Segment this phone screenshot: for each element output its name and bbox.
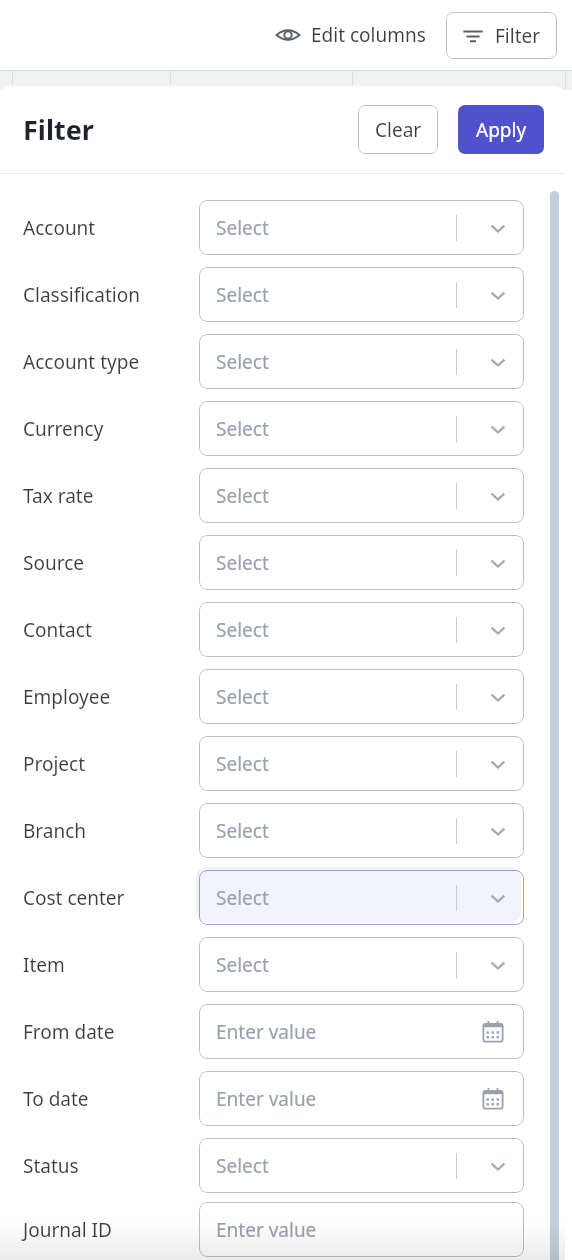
- button[interactable]: Cost center: [0, 864, 565, 931]
- staticText: Classification: [23, 282, 140, 308]
- staticText: Select: [216, 684, 269, 710]
- button[interactable]: Source: [0, 529, 565, 596]
- button[interactable]: Open Source options: [456, 546, 512, 580]
- button[interactable]: Currency: [0, 395, 565, 462]
- staticText: Source: [23, 550, 84, 576]
- button[interactable]: Project: [0, 730, 565, 797]
- staticText: Enter value: [216, 1086, 317, 1112]
- staticText: Select: [216, 282, 269, 308]
- button[interactable]: Open Employee options: [456, 680, 512, 714]
- button[interactable]: Open Project options: [456, 747, 512, 781]
- button[interactable]: Item: [0, 931, 565, 998]
- button[interactable]: Edit columns: [269, 16, 432, 54]
- button[interactable]: Account type: [0, 328, 565, 395]
- staticText: Select: [216, 349, 269, 375]
- button[interactable]: Pick To date: [479, 1085, 507, 1113]
- staticText: Item: [23, 952, 65, 978]
- button[interactable]: Filter: [446, 12, 557, 59]
- button[interactable]: Pick From date: [479, 1018, 507, 1046]
- button[interactable]: Open Item options: [456, 948, 512, 982]
- staticText: Branch: [23, 818, 87, 844]
- staticText: Select: [216, 550, 269, 576]
- staticText: Filter: [495, 23, 541, 49]
- button[interactable]: From date: [0, 998, 565, 1065]
- staticText: Contact: [23, 617, 92, 643]
- staticText: Status: [23, 1153, 79, 1179]
- button[interactable]: Journal ID: [0, 1199, 565, 1260]
- button[interactable]: Contact: [0, 596, 565, 663]
- button[interactable]: Open Tax rate options: [456, 479, 512, 513]
- staticText: Select: [216, 1153, 269, 1179]
- button[interactable]: Account: [0, 194, 565, 261]
- staticText: Account: [23, 215, 96, 241]
- button[interactable]: Open Branch options: [456, 814, 512, 848]
- staticText: Select: [216, 818, 269, 844]
- staticText: To date: [23, 1086, 89, 1112]
- staticText: Edit columns: [311, 22, 426, 48]
- staticText: Project: [23, 751, 86, 777]
- button[interactable]: Status: [0, 1132, 565, 1199]
- staticText: From date: [23, 1019, 115, 1045]
- button[interactable]: Branch: [0, 797, 565, 864]
- staticText: Select: [216, 416, 269, 442]
- staticText: Currency: [23, 416, 104, 442]
- button[interactable]: Apply: [458, 105, 544, 154]
- staticText: Apply: [476, 117, 527, 143]
- button[interactable]: Classification: [0, 261, 565, 328]
- button[interactable]: Open Account type options: [456, 345, 512, 379]
- button[interactable]: Open Cost center options: [456, 881, 512, 915]
- staticText: Filter: [23, 111, 94, 148]
- button[interactable]: Tax rate: [0, 462, 565, 529]
- staticText: Enter value: [216, 1217, 317, 1243]
- button[interactable]: Open Classification options: [456, 278, 512, 312]
- button[interactable]: Open Account options: [456, 211, 512, 245]
- button[interactable]: Open Contact options: [456, 613, 512, 647]
- button[interactable]: Clear: [358, 105, 438, 154]
- staticText: Select: [216, 215, 269, 241]
- staticText: Select: [216, 751, 269, 777]
- button[interactable]: To date: [0, 1065, 565, 1132]
- staticText: Select: [216, 483, 269, 509]
- staticText: Employee: [23, 684, 111, 710]
- button[interactable]: Open Currency options: [456, 412, 512, 446]
- staticText: Account type: [23, 349, 140, 375]
- button[interactable]: Open Status options: [456, 1149, 512, 1183]
- staticText: Journal ID: [23, 1217, 112, 1243]
- staticText: Select: [216, 617, 269, 643]
- staticText: Select: [216, 885, 269, 911]
- button[interactable]: Employee: [0, 663, 565, 730]
- staticText: Tax rate: [23, 483, 94, 509]
- staticText: Clear: [375, 117, 422, 143]
- staticText: Select: [216, 952, 269, 978]
- staticText: Cost center: [23, 885, 125, 911]
- staticText: Enter value: [216, 1019, 317, 1045]
